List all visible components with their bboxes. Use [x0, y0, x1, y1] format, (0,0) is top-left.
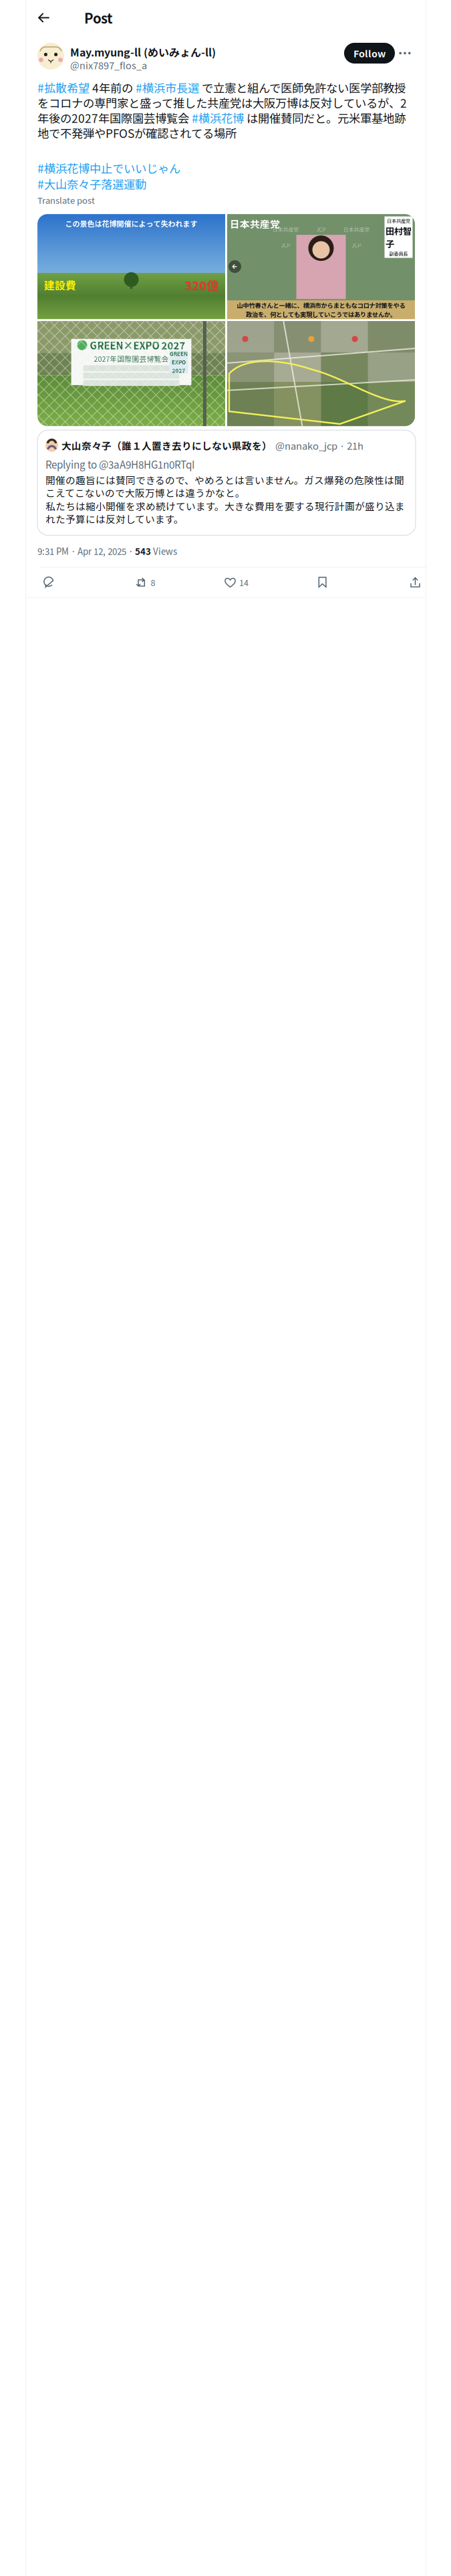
staticText: JCP — [281, 241, 290, 249]
staticText: 日本共産党 — [343, 225, 370, 233]
staticText: @nix7897_flos_a — [70, 59, 147, 71]
staticText: 9:31 PM · Apr 12, 2025 · — [37, 545, 135, 558]
staticText: 私たちは縮小開催を求め続けています。大きな費用を要する現行計画が盛り込まれた予算… — [45, 500, 405, 525]
staticText: 日本共産党 — [230, 216, 280, 231]
staticText: JCP — [352, 241, 361, 249]
staticText: 日本共産党 — [308, 241, 334, 249]
staticText: 日本共産党 — [387, 217, 410, 224]
staticText: 建設費 — [44, 277, 76, 293]
staticText: 開催の趣旨には賛同できるので、やめろとは言いません。ガス爆発の危険性は聞こえてこ… — [45, 473, 404, 499]
staticText: GREEN — [170, 350, 188, 358]
staticText: JCP — [316, 225, 326, 233]
button[interactable]: Share — [396, 568, 420, 597]
staticText: #横浜花博中止でいいじゃん — [37, 160, 180, 176]
staticText: EXPO — [172, 358, 186, 366]
staticText: #拡散希望 4年前の #横浜市長選 で立憲と組んで医師免許ない医学部教授をコロナ… — [37, 80, 407, 140]
staticText: Replying to @3aA9H8HG1n0RTqI — [45, 457, 194, 471]
staticText: 田村智子 — [386, 224, 412, 250]
staticText: May.myung-ll (めいみょん-ll) — [70, 45, 216, 59]
staticText: 大山奈々子（誰１人置き去りにしない県政を） — [61, 439, 272, 452]
staticText: 日本共産党 — [272, 225, 299, 233]
staticText: 2027 — [172, 367, 185, 374]
button[interactable]: Repost — [136, 568, 155, 597]
staticText: #大山奈々子落選運動 — [37, 176, 146, 191]
staticText: Translate post — [37, 194, 95, 206]
staticText: 8 — [151, 576, 155, 588]
button[interactable]: Reply — [43, 568, 67, 597]
button[interactable]: 大山奈々子（誰１人置き去りにしない県政を） — [37, 430, 416, 535]
staticText: GREEN×EXPO 2027 — [90, 338, 185, 352]
staticText: 政治を、何としても実現していこうではありませんか。 — [246, 310, 396, 319]
staticText: Post — [84, 8, 113, 27]
staticText: 副委員長 — [389, 250, 408, 257]
staticText: この景色は花博開催によって失われます — [65, 218, 197, 229]
button[interactable]: Bookmark — [318, 568, 327, 597]
button[interactable]: Like — [224, 568, 249, 597]
staticText: Follow — [353, 46, 386, 60]
button[interactable]: Follow — [344, 43, 395, 64]
staticText: 2027年国際園芸博覧会 — [94, 354, 169, 364]
staticText: 山中竹春さんと一緒に、横浜市からまともなコロナ対策をやる — [237, 301, 405, 310]
staticText: 543 — [135, 545, 151, 558]
staticText: 14 — [239, 576, 249, 588]
button[interactable]: Translate post — [37, 194, 95, 206]
staticText: @nanako_jcp · 21h — [275, 439, 363, 452]
button[interactable]: Back — [29, 0, 59, 35]
staticText: Views — [151, 545, 177, 558]
button[interactable]: More options — [395, 43, 415, 64]
staticText: 320億 — [184, 276, 218, 294]
